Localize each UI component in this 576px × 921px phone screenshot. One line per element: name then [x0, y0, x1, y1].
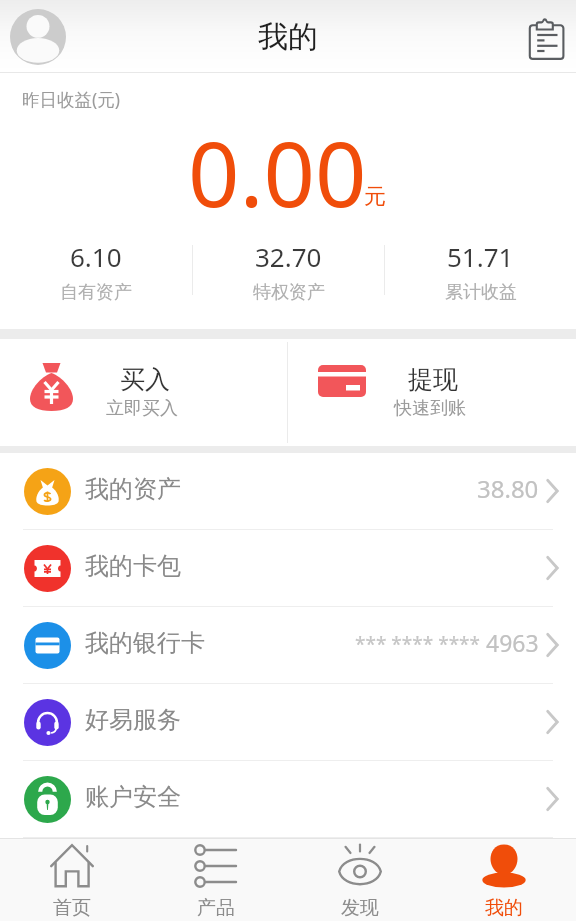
- button[interactable]: 首页: [0, 839, 144, 921]
- button[interactable]: 我的银行卡: [0, 607, 576, 684]
- button[interactable]: 提现: [288, 339, 576, 446]
- button[interactable]: 32.70: [193, 239, 384, 301]
- staticText: 51.71: [447, 239, 514, 274]
- button[interactable]: 51.71: [385, 239, 576, 301]
- staticText: 特权资产: [253, 281, 325, 301]
- staticText: 立即买入: [106, 397, 178, 420]
- staticText: 首页: [53, 896, 91, 920]
- staticText: 好易服务: [85, 705, 181, 735]
- staticText: 账户安全: [85, 782, 181, 812]
- staticText: 我的: [485, 896, 523, 920]
- staticText: 32.70: [255, 239, 322, 274]
- staticText: 昨日收益(元): [22, 87, 120, 111]
- staticText: 快速到账: [394, 397, 466, 420]
- button[interactable]: 我的资产: [0, 453, 576, 530]
- staticText: 38.80: [477, 472, 539, 505]
- staticText: 我的: [258, 18, 318, 56]
- staticText: 我的银行卡: [85, 628, 205, 658]
- button[interactable]: 买入: [0, 339, 287, 446]
- staticText: 自有资产: [60, 281, 132, 301]
- button[interactable]: 我的卡包: [0, 530, 576, 607]
- button[interactable]: 产品: [144, 839, 288, 921]
- staticText: 元: [364, 183, 386, 211]
- button[interactable]: 账户安全: [0, 761, 576, 838]
- staticText: 买入: [120, 364, 170, 395]
- staticText: 产品: [197, 896, 235, 920]
- staticText: 4963: [486, 627, 539, 658]
- button[interactable]: 发现: [288, 839, 432, 921]
- staticText: 6.10: [70, 239, 122, 274]
- button[interactable]: Profile avatar: [10, 9, 66, 65]
- staticText: 累计收益: [445, 281, 517, 301]
- staticText: 发现: [341, 896, 379, 920]
- staticText: 提现: [408, 364, 458, 395]
- staticText: *** **** ****: [355, 631, 481, 657]
- staticText: 0.00: [188, 111, 367, 234]
- button[interactable]: 好易服务: [0, 684, 576, 761]
- button[interactable]: Records: [522, 14, 567, 59]
- button[interactable]: 我的: [432, 839, 576, 921]
- staticText: 我的卡包: [85, 551, 181, 581]
- button[interactable]: 6.10: [0, 239, 192, 301]
- staticText: 我的资产: [85, 474, 181, 504]
